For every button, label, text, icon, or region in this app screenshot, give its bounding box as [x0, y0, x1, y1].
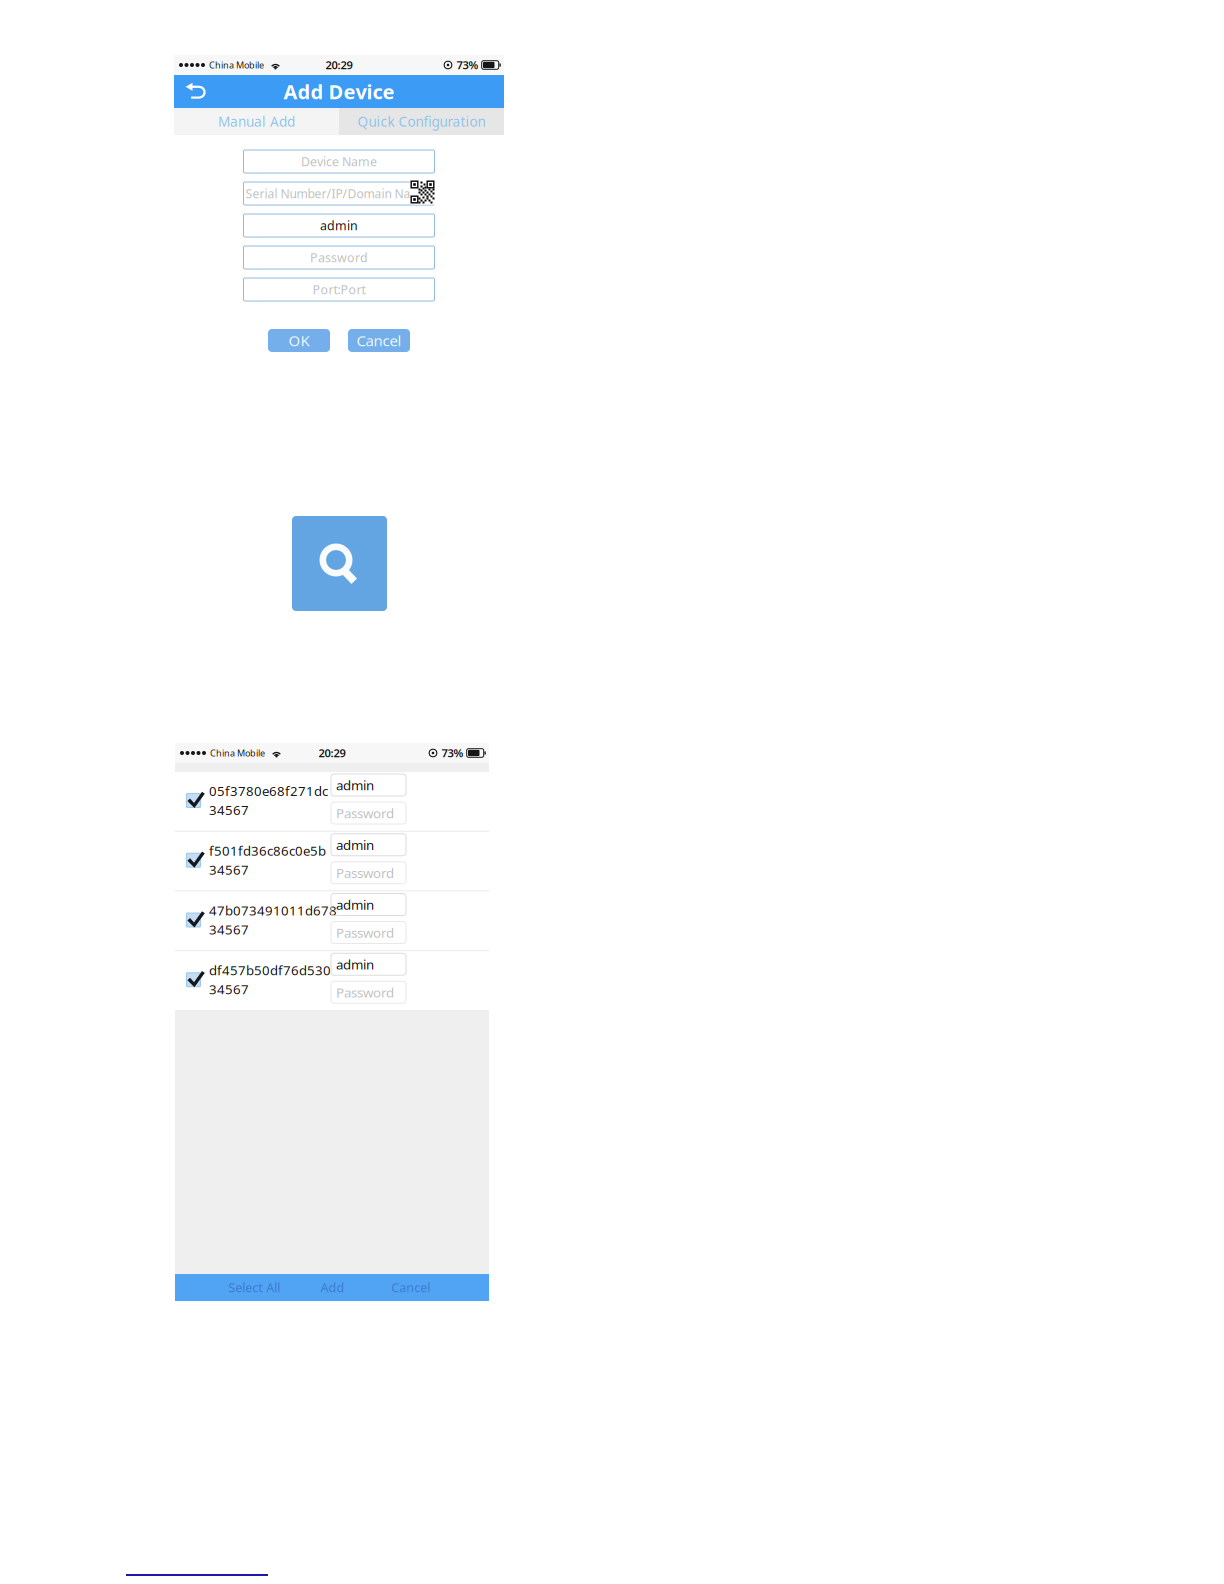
button[interactable]: Search	[292, 516, 387, 611]
staticText: 34567	[209, 980, 249, 998]
staticText: admin	[336, 955, 374, 973]
button[interactable]: Manual Add	[174, 108, 339, 135]
staticText: 47b073491011d678	[209, 901, 337, 919]
staticText: Password	[336, 924, 394, 941]
staticText: 34567	[209, 920, 249, 938]
staticText: Add	[320, 1279, 344, 1296]
staticText: OK	[288, 330, 309, 351]
button[interactable]: Cancel	[372, 1274, 450, 1301]
staticText: 20:29	[325, 57, 352, 73]
button[interactable]: Select All	[215, 1274, 293, 1301]
staticText: Quick Configuration	[357, 112, 485, 131]
button[interactable]: OK	[268, 329, 330, 352]
staticText: Port:Port	[312, 281, 365, 298]
button[interactable]: Back	[174, 75, 218, 108]
staticText: Device Name	[301, 153, 377, 170]
button[interactable]: Add	[293, 1274, 372, 1301]
staticText: 05f3780e68f271dc	[209, 782, 328, 800]
button[interactable]: Quick Configuration	[339, 108, 504, 135]
staticText: China Mobile	[209, 59, 264, 71]
staticText: 20:29	[318, 745, 345, 761]
staticText: Manual Add	[218, 112, 295, 131]
button[interactable]: Cancel	[348, 329, 410, 352]
staticText: Select All	[228, 1279, 280, 1296]
staticText: 34567	[209, 861, 249, 879]
staticText: Password	[310, 249, 368, 266]
staticText: 34567	[209, 801, 249, 819]
staticText: Cancel	[391, 1279, 430, 1296]
staticText: admin	[320, 217, 358, 234]
staticText: 73%	[441, 745, 463, 761]
staticText: admin	[336, 776, 374, 794]
staticText: df457b50df76d530	[209, 961, 331, 979]
staticText: Cancel	[356, 330, 401, 351]
staticText: Password	[336, 804, 394, 822]
staticText: Password	[336, 864, 394, 882]
staticText: Password	[336, 983, 394, 1001]
staticText: f501fd36c86c0e5b	[209, 842, 326, 860]
staticText: admin	[336, 836, 374, 854]
staticText: 73%	[456, 57, 478, 73]
staticText: China Mobile	[210, 747, 265, 759]
staticText: admin	[336, 896, 374, 913]
staticText: Serial Number/IP/Domain Na...	[245, 185, 419, 202]
staticText: Add Device	[283, 78, 394, 105]
